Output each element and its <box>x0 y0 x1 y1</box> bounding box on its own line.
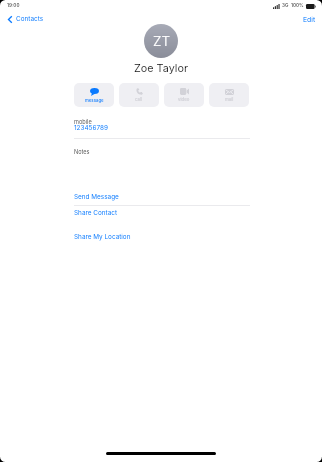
staticText: ZT <box>153 33 170 49</box>
staticText: 100% <box>291 3 304 9</box>
staticText: Send Message <box>74 193 119 201</box>
button[interactable]: mail <box>209 83 249 107</box>
button[interactable]: Contacts <box>6 12 46 26</box>
staticText: 3G <box>282 3 289 9</box>
staticText: Contacts <box>16 15 44 23</box>
staticText: mobile <box>74 119 92 126</box>
button[interactable]: Edit <box>301 12 318 26</box>
button[interactable]: Share My Location <box>74 230 250 243</box>
button[interactable]: call <box>119 83 159 107</box>
staticText: Share Contact <box>74 209 118 217</box>
staticText: Zoe Taylor <box>134 62 188 75</box>
staticText: Notes <box>74 149 90 156</box>
staticText: Edit <box>303 15 316 23</box>
button[interactable]: Send Message <box>74 190 250 203</box>
staticText: message <box>85 98 104 103</box>
button[interactable]: message <box>74 83 114 107</box>
staticText: Share My Location <box>74 233 131 241</box>
button[interactable]: video <box>164 83 204 107</box>
staticText: 19:00 <box>7 3 20 9</box>
staticText: 123456789 <box>74 124 108 132</box>
staticText: video <box>178 97 190 102</box>
button[interactable]: Share Contact <box>74 206 250 219</box>
button[interactable]: mobile <box>74 116 250 138</box>
staticText: call <box>135 97 143 102</box>
staticText: mail <box>225 97 234 102</box>
